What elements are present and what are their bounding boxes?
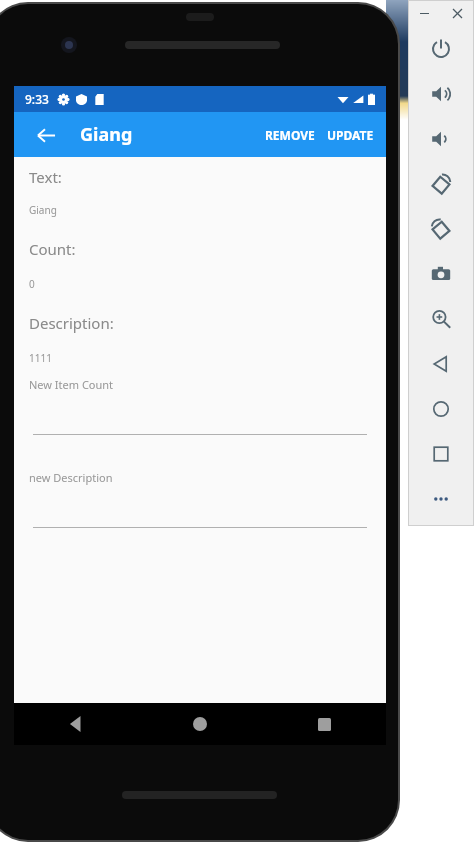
button[interactable]: Zoom xyxy=(408,296,474,341)
button[interactable]: Power xyxy=(408,26,474,71)
staticText: Giang xyxy=(80,122,133,147)
staticText: 1111 xyxy=(29,351,52,365)
button[interactable]: Rotate left xyxy=(408,161,474,206)
button[interactable]: Take screenshot xyxy=(408,251,474,296)
button[interactable]: Volume down xyxy=(408,116,474,161)
button[interactable]: Close xyxy=(441,0,474,26)
staticText: New Item Count xyxy=(29,377,114,392)
button[interactable]: Recent apps xyxy=(262,703,386,745)
staticText: Count: xyxy=(29,239,76,259)
button[interactable]: Overview xyxy=(408,431,474,476)
staticText: Text: xyxy=(29,167,62,187)
button[interactable]: Volume up xyxy=(408,71,474,116)
button[interactable]: Back xyxy=(408,341,474,386)
button[interactable]: Home xyxy=(408,386,474,431)
button[interactable]: More xyxy=(408,476,474,521)
staticText: Description: xyxy=(29,313,114,333)
staticText: Giang xyxy=(29,203,57,217)
button[interactable]: Home xyxy=(138,703,262,745)
button[interactable]: UPDATE xyxy=(321,117,380,153)
button[interactable]: Back xyxy=(14,703,138,745)
staticText: UPDATE xyxy=(327,127,374,143)
button[interactable]: Rotate right xyxy=(408,206,474,251)
button[interactable]: Navigate up xyxy=(26,115,66,155)
button[interactable]: New Item Count xyxy=(28,373,372,435)
staticText: REMOVE xyxy=(265,127,315,143)
staticText: new Description xyxy=(29,470,113,485)
staticText: 0 xyxy=(29,277,35,291)
button[interactable]: REMOVE xyxy=(259,117,321,153)
button[interactable]: Minimize xyxy=(408,0,441,26)
button[interactable]: new Description xyxy=(28,466,372,528)
staticText: 9:33 xyxy=(25,91,49,107)
